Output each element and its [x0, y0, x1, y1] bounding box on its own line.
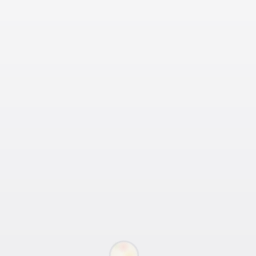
button[interactable]: Item [106, 237, 142, 256]
